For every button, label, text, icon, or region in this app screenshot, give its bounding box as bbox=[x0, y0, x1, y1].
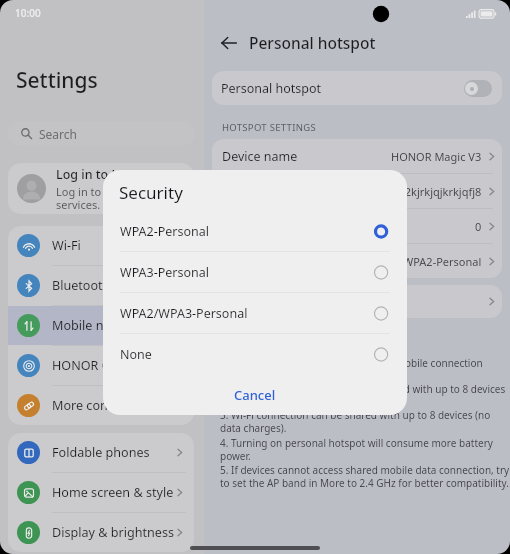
staticText: Security bbox=[222, 253, 403, 270]
staticText: Foldable phones bbox=[52, 444, 174, 461]
button[interactable]: WPA3-Personal bbox=[103, 252, 407, 292]
staticText: WPA2/WPA3-Personal bbox=[120, 305, 373, 322]
button[interactable]: More bbox=[212, 285, 502, 318]
staticText: Settings bbox=[16, 66, 98, 95]
staticText: 0 bbox=[475, 219, 482, 234]
button[interactable]: HONOR Connect bbox=[8, 346, 194, 385]
staticText: Wi-Fi bbox=[52, 237, 185, 254]
staticText: data charges). bbox=[220, 421, 287, 435]
staticText: None bbox=[120, 346, 373, 363]
staticText: 3. Wi-Fi connection can be shared with u… bbox=[220, 408, 491, 422]
button[interactable]: Password bbox=[212, 174, 502, 208]
button[interactable]: WPA2/WPA3-Personal bbox=[103, 293, 407, 333]
button[interactable]: Cancel bbox=[216, 380, 294, 410]
button[interactable]: Home screen & style bbox=[8, 473, 194, 512]
staticText: Connected devices bbox=[222, 218, 475, 235]
staticText: WPA2-Personal bbox=[403, 254, 482, 269]
staticText: 2. Mobile data connection can be shared … bbox=[220, 382, 506, 396]
staticText: WPA2-Personal bbox=[120, 223, 373, 240]
button[interactable]: Display & brightness bbox=[8, 513, 194, 552]
staticText: Log in to enjoy more services. bbox=[56, 184, 194, 212]
button[interactable]: More connections bbox=[8, 386, 194, 425]
staticText: 4. Turning on personal hotspot will cons… bbox=[220, 436, 493, 450]
button[interactable]: Wi-Fi bbox=[8, 226, 194, 265]
staticText: More connections bbox=[52, 397, 185, 414]
button[interactable]: Foldable phones bbox=[8, 433, 194, 472]
staticText: Security bbox=[119, 181, 183, 204]
staticText: 5. If devices cannot access shared mobil… bbox=[220, 463, 510, 477]
staticText: kj2kjrkjqjkrkjqfj8 bbox=[396, 184, 482, 199]
button[interactable]: Search bbox=[8, 121, 195, 146]
button[interactable]: Bluetooth bbox=[8, 266, 194, 305]
staticText: Search bbox=[39, 126, 77, 142]
button[interactable]: Device name bbox=[212, 139, 502, 173]
staticText: Bluetooth bbox=[52, 277, 185, 294]
button[interactable]: None bbox=[103, 334, 407, 374]
staticText: power. bbox=[220, 449, 251, 463]
staticText: HOTSPOT SETTINGS bbox=[222, 121, 316, 134]
staticText: Home screen & style bbox=[52, 484, 174, 501]
staticText: 1. Other devices can use this phone's mo… bbox=[220, 356, 483, 370]
staticText: HONOR Connect bbox=[52, 357, 185, 374]
staticText: More bbox=[222, 293, 253, 310]
staticText: Device name bbox=[222, 148, 391, 165]
staticText: Display & brightness bbox=[52, 524, 174, 541]
staticText: Log in to HONOR ID bbox=[56, 166, 175, 183]
button[interactable]: Mobile network bbox=[8, 306, 194, 345]
staticText: Mobile network bbox=[52, 317, 185, 334]
button[interactable]: Personal hotspot bbox=[212, 71, 502, 105]
staticText: to set the AP band in More to 2.4 GHz fo… bbox=[220, 476, 509, 490]
staticText: Cancel bbox=[234, 386, 276, 404]
staticText: Personal hotspot bbox=[221, 80, 464, 97]
button[interactable]: WPA2-Personal bbox=[103, 211, 407, 251]
staticText: HONOR Magic V3 bbox=[391, 149, 482, 164]
staticText: Personal hotspot bbox=[249, 32, 376, 53]
button[interactable]: Log in to HONOR ID bbox=[8, 163, 194, 214]
button[interactable]: Back bbox=[218, 32, 240, 54]
staticText: 10:00 bbox=[15, 6, 41, 20]
staticText: WPA3-Personal bbox=[120, 264, 373, 281]
button[interactable]: Connected devices bbox=[212, 209, 502, 243]
button[interactable]: Security bbox=[212, 244, 502, 278]
